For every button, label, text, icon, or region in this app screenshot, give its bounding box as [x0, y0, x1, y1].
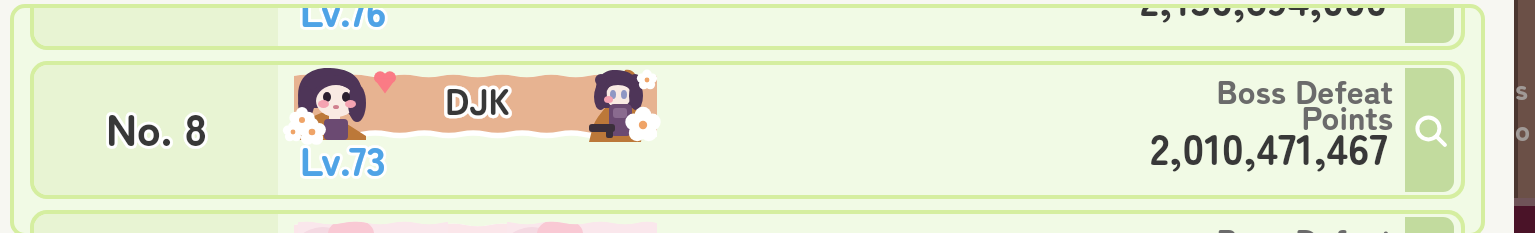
staticText: 2,136,894,000 [1140, 8, 1388, 28]
button[interactable]: No. 9 [30, 210, 1465, 233]
staticText: Lv.76 [300, 8, 387, 38]
button[interactable]: No. 8 [30, 61, 1465, 199]
staticText: Lv.76 [300, 8, 387, 38]
staticText: Lv.73 [300, 128, 386, 187]
staticText: DJK [445, 73, 511, 125]
staticText: Boss Defeat Points [1216, 215, 1393, 233]
staticText: so [1515, 68, 1535, 150]
button[interactable]: No. 7 [30, 8, 1465, 50]
staticText: 2,010,471,467 [1150, 115, 1388, 177]
staticText: No. 8 [106, 95, 207, 159]
button[interactable]: Search [1405, 8, 1454, 43]
staticText: DJK [445, 73, 511, 125]
staticText: No. 8 [106, 95, 207, 159]
staticText: Boss Defeat Points [1216, 66, 1393, 139]
button[interactable]: Search [1405, 217, 1454, 233]
staticText: Lv.73 [300, 128, 386, 187]
button[interactable]: Search [1405, 68, 1454, 192]
